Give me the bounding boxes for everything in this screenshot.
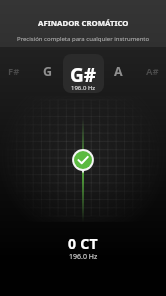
staticText: 196.0 Hz bbox=[69, 252, 98, 262]
button[interactable]: F# bbox=[1, 62, 27, 80]
staticText: F# bbox=[8, 65, 20, 78]
button[interactable]: A# bbox=[139, 62, 165, 80]
staticText: A bbox=[114, 63, 123, 80]
staticText: 196.0 Hz bbox=[71, 84, 96, 92]
button[interactable]: A bbox=[105, 62, 131, 80]
staticText: A# bbox=[146, 65, 159, 78]
staticText: G bbox=[43, 63, 53, 80]
staticText: Precisión completa para cualquier instru… bbox=[17, 35, 150, 43]
button[interactable] bbox=[63, 54, 104, 93]
staticText: G# bbox=[70, 62, 97, 84]
button[interactable]: G bbox=[35, 62, 61, 80]
staticText: 0 CT bbox=[68, 234, 98, 253]
staticText: AFINADOR CROMÁTICO bbox=[38, 18, 129, 29]
